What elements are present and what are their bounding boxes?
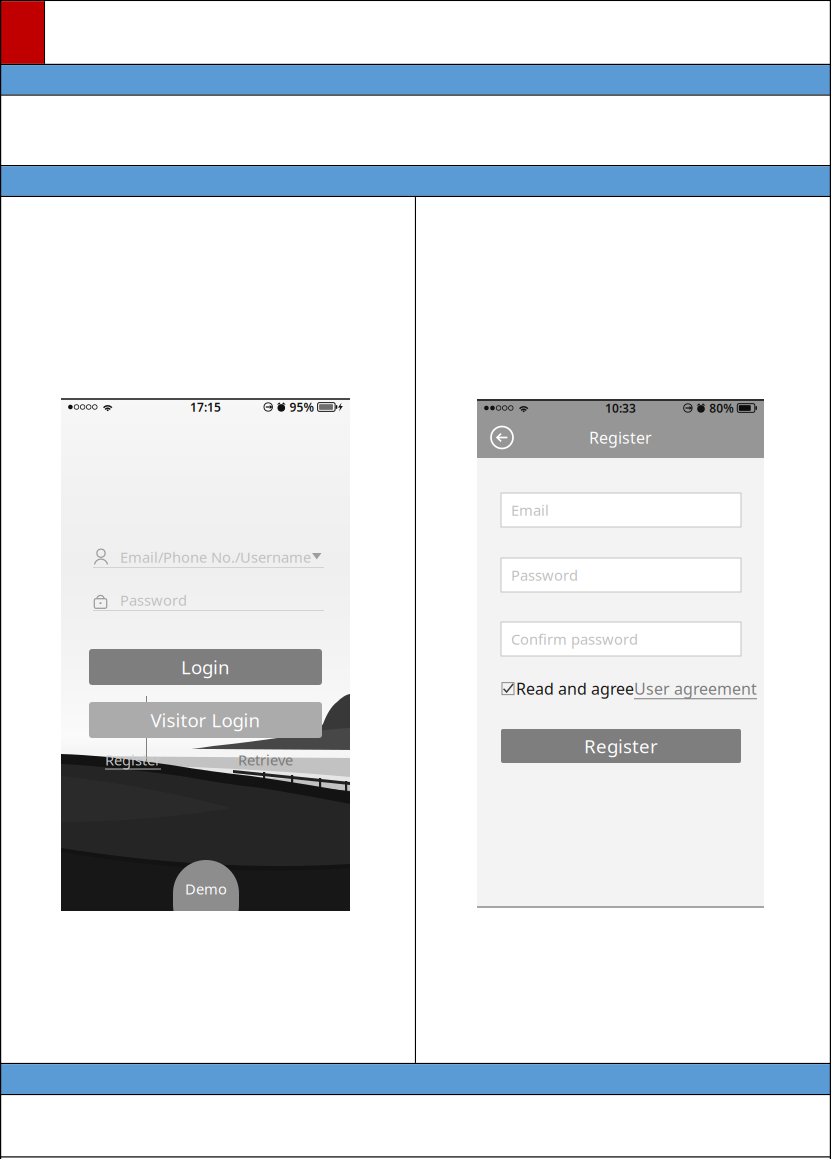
staticText: 95% xyxy=(290,399,315,415)
button[interactable]: Read and agree checkbox xyxy=(502,683,514,695)
staticText: Password xyxy=(120,590,187,610)
staticText: Register xyxy=(589,427,652,448)
button[interactable]: User agreement xyxy=(634,678,757,699)
staticText: Register xyxy=(105,750,161,769)
staticText: 10:33 xyxy=(605,400,636,416)
staticText: User agreement xyxy=(634,678,757,699)
staticText: 17:15 xyxy=(190,399,221,415)
button[interactable]: Back xyxy=(491,426,513,448)
staticText: Login xyxy=(181,655,230,679)
staticText: Register xyxy=(584,734,658,758)
button[interactable]: Register xyxy=(105,750,161,769)
staticText: Password xyxy=(511,565,578,585)
staticText: 80% xyxy=(709,400,734,416)
button[interactable]: Retrieve xyxy=(238,750,293,769)
staticText: Visitor Login xyxy=(150,708,260,732)
staticText: Demo xyxy=(185,879,227,898)
button[interactable]: Visitor Login xyxy=(89,702,322,738)
staticText: Read and agree xyxy=(516,678,634,699)
staticText: Retrieve xyxy=(238,750,293,769)
button[interactable]: Demo xyxy=(173,860,239,938)
staticText: Confirm password xyxy=(511,629,638,649)
button[interactable]: Register xyxy=(501,729,741,763)
staticText: Email/Phone No./Username xyxy=(120,547,311,567)
button[interactable]: Login xyxy=(89,649,322,685)
staticText: Email xyxy=(511,500,549,520)
